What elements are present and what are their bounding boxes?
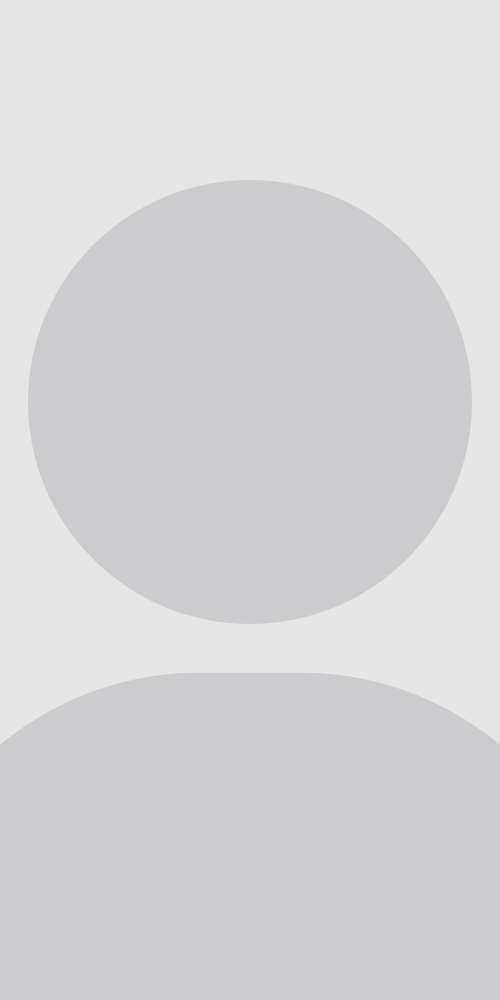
button[interactable]: Profile photo placeholder: [0, 0, 500, 1000]
